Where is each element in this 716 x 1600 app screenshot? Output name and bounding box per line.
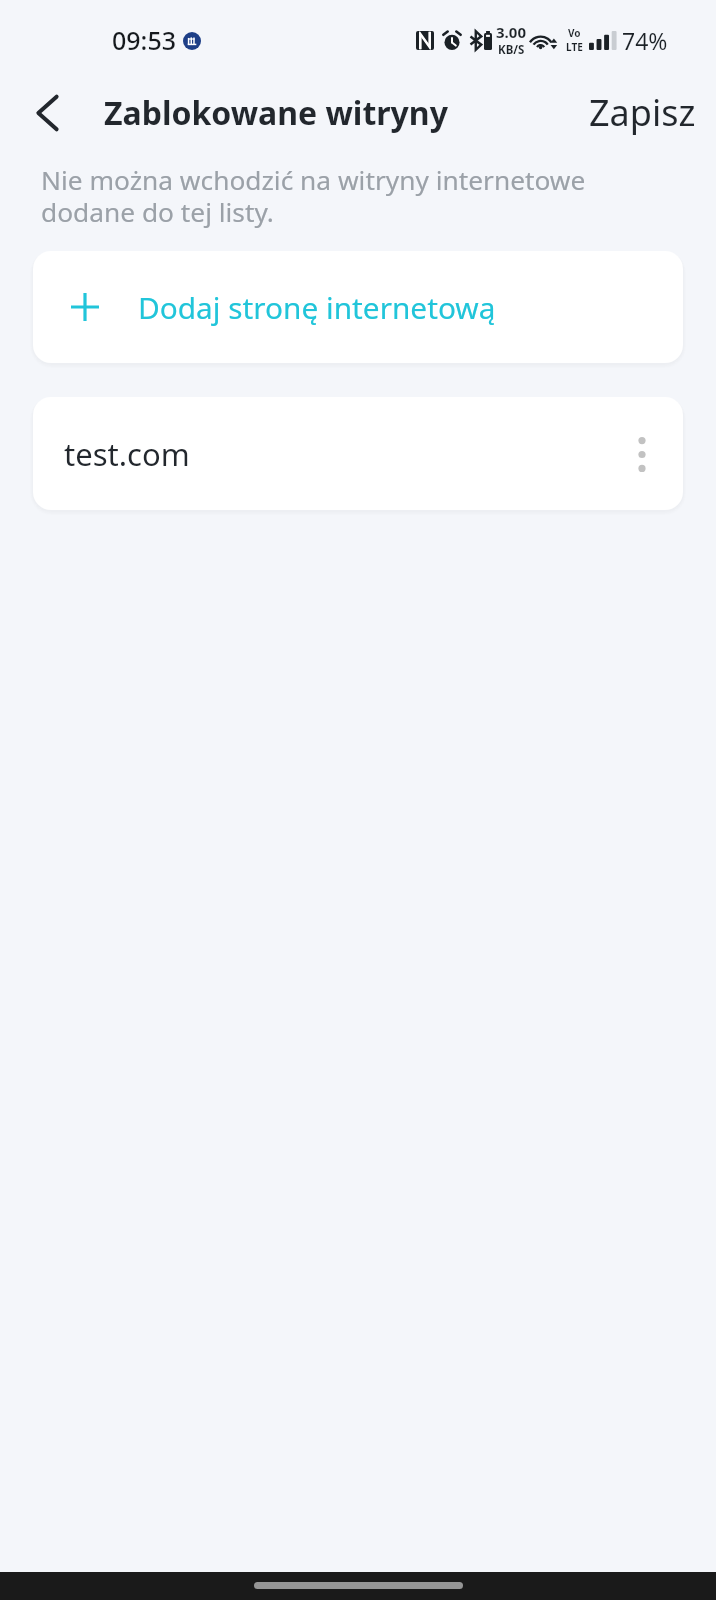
staticText: Vo xyxy=(568,26,581,40)
staticText: 3.00 xyxy=(496,22,526,42)
button[interactable]: More options xyxy=(614,426,670,482)
button[interactable]: Dodaj stronę internetową xyxy=(33,251,683,363)
staticText: 09:53 xyxy=(112,23,177,57)
button[interactable]: Zapisz xyxy=(573,76,716,149)
staticText: 74% xyxy=(622,25,668,56)
staticText: LTE xyxy=(566,40,583,54)
button[interactable]: test.com xyxy=(33,397,683,510)
button[interactable]: Back xyxy=(14,80,80,146)
staticText: Nie można wchodzić na witryny internetow… xyxy=(41,162,586,230)
staticText: test.com xyxy=(64,433,190,475)
staticText: KB/S xyxy=(498,42,525,58)
staticText: Zablokowane witryny xyxy=(104,91,448,135)
staticText: Zapisz xyxy=(589,88,696,137)
staticText: Dodaj stronę internetową xyxy=(138,287,496,328)
